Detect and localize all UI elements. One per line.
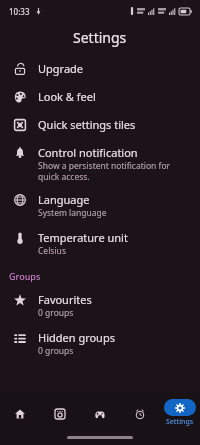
staticText: 0 groups bbox=[38, 345, 74, 357]
staticText: Hidden groups bbox=[38, 330, 115, 345]
staticText: Temperature unit bbox=[38, 230, 128, 245]
staticText: 0 groups bbox=[38, 307, 74, 319]
button[interactable]: Games bbox=[80, 393, 120, 433]
staticText: System language bbox=[38, 207, 107, 219]
button[interactable]: Quick settings tiles bbox=[0, 117, 200, 133]
button[interactable]: Home bbox=[0, 393, 40, 433]
button[interactable]: Upgrade bbox=[0, 61, 200, 77]
button[interactable]: Temperature unit bbox=[0, 230, 200, 257]
staticText: Celsius bbox=[38, 245, 66, 257]
button[interactable]: Control notification bbox=[0, 145, 200, 182]
staticText: 10:33 bbox=[9, 6, 30, 17]
staticText: Settings bbox=[73, 28, 127, 47]
staticText: Upgrade bbox=[38, 61, 84, 76]
button[interactable]: Apps bbox=[40, 393, 80, 433]
button[interactable]: Settings bbox=[160, 393, 200, 433]
staticText: Language bbox=[38, 192, 90, 207]
button[interactable]: Look & feel bbox=[0, 89, 200, 105]
button[interactable]: Favourites bbox=[0, 292, 200, 319]
staticText: Favourites bbox=[38, 292, 92, 307]
staticText: Groups bbox=[9, 270, 41, 282]
staticText: Look & feel bbox=[38, 89, 96, 104]
button[interactable]: Hidden groups bbox=[0, 330, 200, 357]
staticText: Control notification bbox=[38, 145, 138, 160]
button[interactable]: Alarms bbox=[120, 393, 160, 433]
staticText: Settings bbox=[166, 417, 194, 427]
staticText: Quick settings tiles bbox=[38, 117, 136, 132]
staticText: Show a persistent notification for quick… bbox=[38, 160, 188, 182]
button[interactable]: Language bbox=[0, 192, 200, 219]
